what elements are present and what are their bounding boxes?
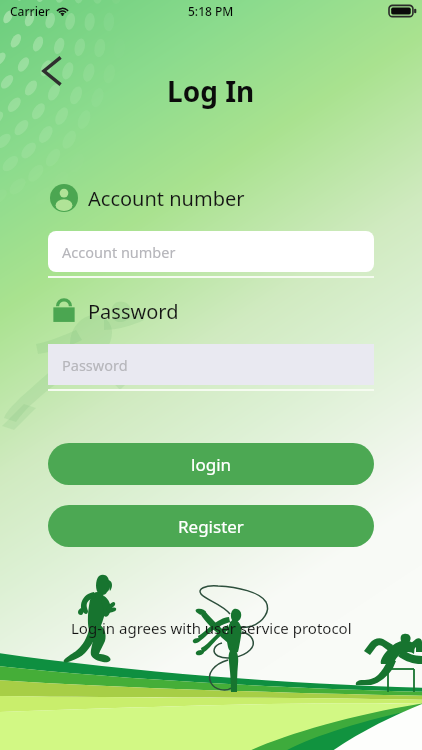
button[interactable]: Password [48, 344, 374, 385]
staticText: Log In [167, 72, 255, 110]
staticText: Password [62, 355, 128, 375]
staticText: login [191, 453, 232, 476]
staticText: Password [88, 298, 179, 325]
staticText: 5:18 PM [188, 3, 234, 19]
staticText: Account number [88, 185, 245, 212]
staticText: Register [178, 515, 244, 538]
staticText: Log-in agrees with user service protocol [71, 618, 352, 638]
button[interactable]: Register [48, 505, 374, 547]
button[interactable]: Account number [48, 231, 374, 272]
button[interactable]: login [48, 443, 374, 485]
staticText: Account number [62, 242, 176, 262]
button[interactable]: Back [34, 52, 72, 90]
staticText: Carrier [10, 3, 50, 19]
